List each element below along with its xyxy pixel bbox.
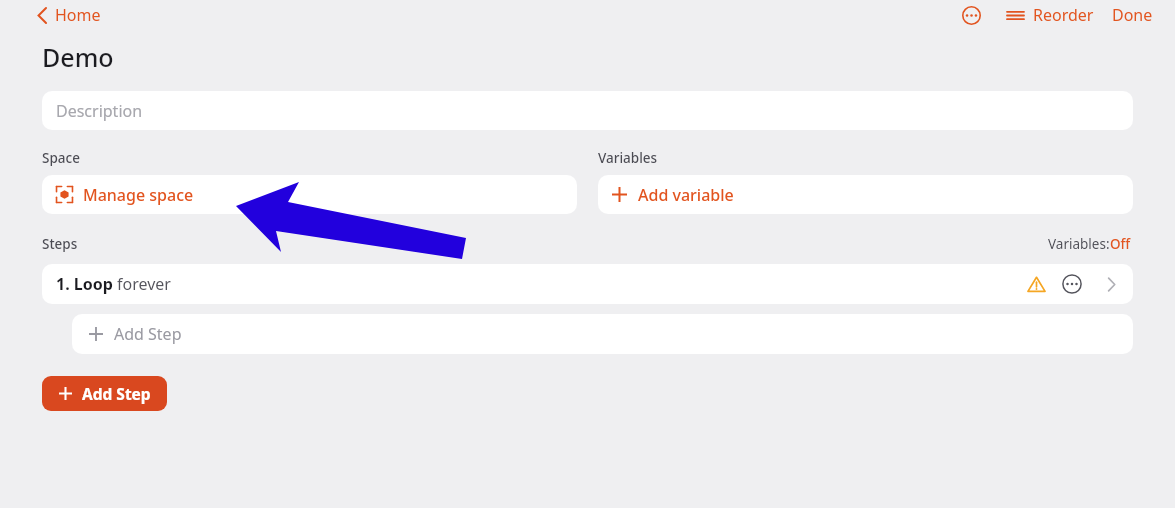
staticText: Off [1110, 235, 1131, 253]
staticText: Space [42, 149, 80, 167]
staticText: Variables [598, 149, 658, 167]
staticText: 1. Loop forever [56, 273, 171, 295]
button[interactable]: Reorder [1004, 2, 1096, 28]
button[interactable]: Home [33, 2, 105, 28]
staticText: Manage space [83, 184, 194, 206]
staticText: Description [56, 100, 143, 122]
button[interactable]: Done [1110, 2, 1155, 28]
button[interactable]: Warning [1025, 273, 1047, 295]
staticText: Add Step [114, 323, 182, 345]
staticText: Home [55, 4, 101, 26]
staticText: Done [1112, 4, 1153, 26]
staticText: Reorder [1033, 4, 1094, 26]
button[interactable]: Variables: [1046, 233, 1133, 255]
button[interactable]: Add Step [42, 376, 167, 411]
staticText: Add Step [82, 383, 151, 404]
button[interactable]: Add Step [72, 314, 1133, 354]
button[interactable]: Description [42, 91, 1133, 130]
button[interactable]: Add variable [598, 175, 1133, 214]
button[interactable]: Manage space [42, 175, 577, 214]
button[interactable]: 1. Loop forever [42, 264, 1133, 304]
button[interactable]: More options [959, 3, 984, 28]
button[interactable]: Step options [1061, 273, 1083, 295]
staticText: Add variable [638, 184, 734, 206]
button[interactable]: Open step [1101, 274, 1121, 294]
staticText: Variables: [1048, 235, 1110, 253]
staticText: Demo [42, 40, 114, 74]
staticText: Steps [42, 235, 78, 253]
